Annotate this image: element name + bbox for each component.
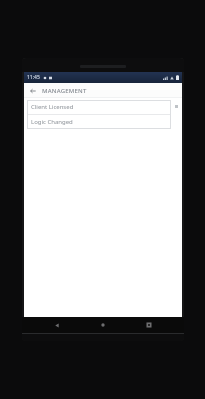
button[interactable]: Navigate back xyxy=(27,85,38,96)
button[interactable]: More options xyxy=(173,100,180,130)
staticText: Logic Changed xyxy=(31,118,73,126)
button[interactable]: Recent apps xyxy=(138,317,160,333)
button[interactable]: Client Licensed xyxy=(27,100,171,114)
staticText: 11:45 xyxy=(27,74,40,81)
staticText: Client Licensed xyxy=(31,103,74,111)
staticText: MANAGEMENT xyxy=(42,87,87,95)
button[interactable]: Back xyxy=(46,317,68,333)
button[interactable]: Home xyxy=(92,317,114,333)
button[interactable]: Logic Changed xyxy=(27,115,171,129)
